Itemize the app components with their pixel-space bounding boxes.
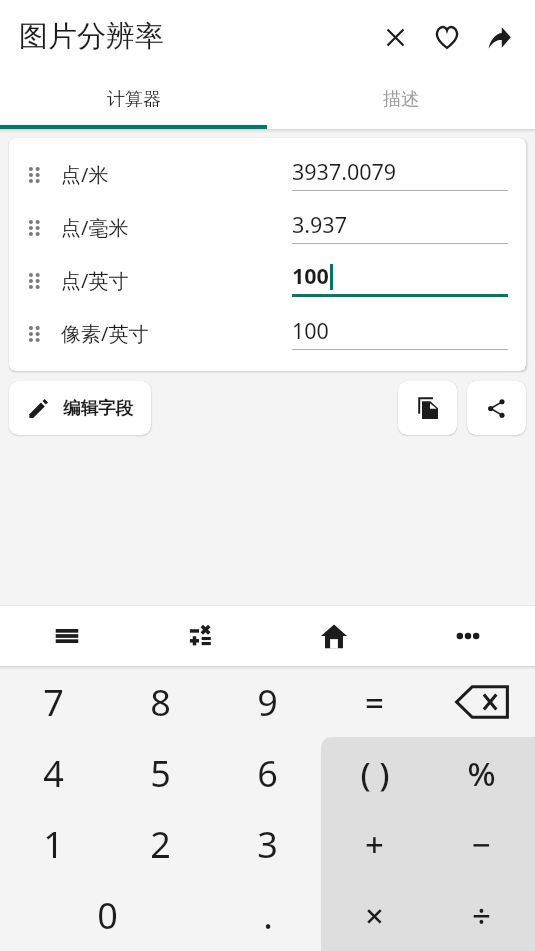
staticText: 100 — [292, 316, 329, 345]
staticText: + — [365, 822, 384, 867]
button[interactable]: Share — [473, 11, 525, 63]
button[interactable]: 0 — [0, 880, 214, 951]
staticText: 6 — [257, 749, 278, 798]
staticText: % — [467, 751, 496, 796]
button[interactable]: 6 — [214, 738, 321, 809]
staticText: 描述 — [383, 88, 419, 111]
staticText: 5 — [150, 749, 171, 798]
button[interactable]: = — [321, 666, 428, 738]
button[interactable]: 1 — [0, 809, 107, 880]
button[interactable]: − — [428, 809, 535, 880]
button[interactable]: ( ) — [321, 738, 428, 809]
button[interactable]: Menu — [0, 606, 133, 666]
staticText: 3 — [257, 820, 278, 869]
button[interactable]: + — [321, 809, 428, 880]
button[interactable]: Copy — [398, 381, 457, 435]
staticText: ( ) — [360, 751, 390, 796]
staticText: − — [472, 822, 491, 867]
button[interactable]: 4 — [0, 738, 107, 809]
button[interactable]: ÷ — [428, 880, 535, 951]
button[interactable]: 点/英寸 — [9, 254, 526, 307]
button[interactable]: 编辑字段 — [9, 381, 151, 435]
button[interactable]: Favorite — [421, 11, 473, 63]
button[interactable]: % — [428, 738, 535, 809]
staticText: 8 — [150, 678, 171, 727]
staticText: ÷ — [472, 893, 491, 938]
button[interactable]: Home — [267, 606, 401, 666]
staticText: 100 — [292, 261, 329, 290]
staticText: 9 — [257, 678, 278, 727]
staticText: 2 — [150, 820, 171, 869]
button[interactable]: 点/米 — [9, 148, 526, 201]
staticText: 7 — [43, 678, 64, 727]
staticText: 点/英寸 — [61, 267, 129, 294]
button[interactable]: . — [214, 880, 321, 951]
staticText: 像素/英寸 — [61, 320, 149, 347]
staticText: 计算器 — [107, 88, 161, 111]
staticText: × — [365, 893, 384, 938]
button[interactable]: 5 — [107, 738, 214, 809]
button[interactable]: Calculator — [133, 606, 267, 666]
button[interactable]: 8 — [107, 666, 214, 738]
button[interactable]: Share — [467, 381, 526, 435]
staticText: 点/毫米 — [61, 214, 129, 241]
staticText: 编辑字段 — [63, 397, 133, 419]
button[interactable]: More — [401, 606, 535, 666]
staticText: 1 — [43, 820, 64, 869]
button[interactable]: 点/毫米 — [9, 201, 526, 254]
staticText: = — [365, 680, 384, 725]
button[interactable] — [428, 666, 535, 738]
button[interactable]: 像素/英寸 — [9, 307, 526, 360]
button[interactable]: 9 — [214, 666, 321, 738]
button[interactable]: Close — [369, 11, 421, 63]
staticText: 4 — [43, 749, 64, 798]
button[interactable]: 3 — [214, 809, 321, 880]
button[interactable]: 描述 — [267, 73, 535, 125]
staticText: 0 — [97, 891, 118, 940]
staticText: . — [263, 891, 273, 940]
button[interactable]: 计算器 — [0, 73, 267, 125]
staticText: 3937.0079 — [292, 157, 397, 186]
button[interactable]: 7 — [0, 666, 107, 738]
staticText: 3.937 — [292, 210, 347, 239]
staticText: 图片分辨率 — [19, 18, 164, 55]
button[interactable]: 2 — [107, 809, 214, 880]
button[interactable]: × — [321, 880, 428, 951]
staticText: 点/米 — [61, 161, 109, 188]
